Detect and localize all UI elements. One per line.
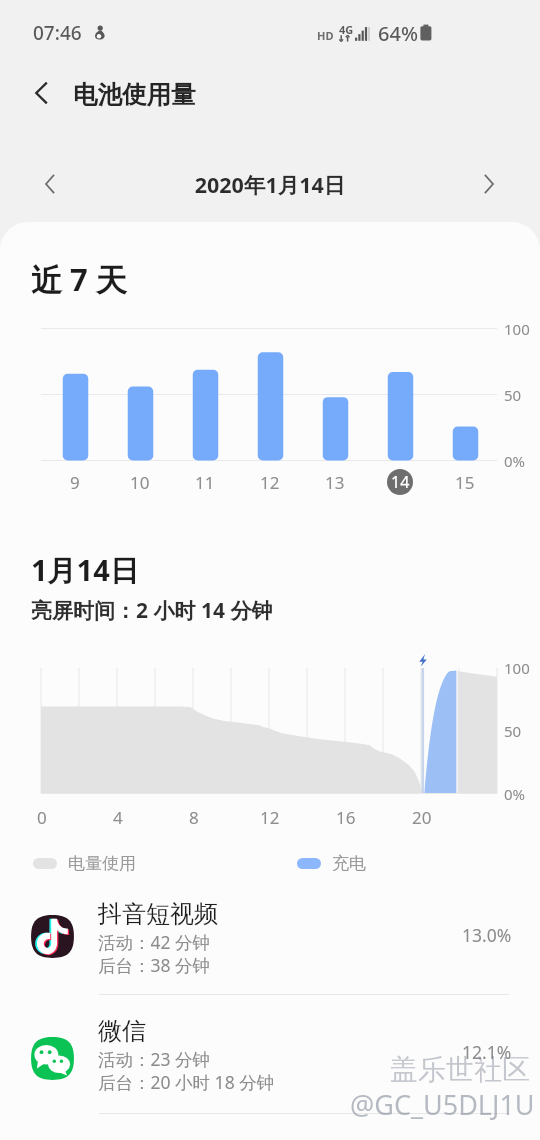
staticText: 4 <box>113 806 123 829</box>
staticText: HD <box>317 28 334 43</box>
staticText: 抖音短视频 <box>98 899 218 929</box>
staticText: 亮屏时间：2 小时 14 分钟 <box>31 596 273 625</box>
button[interactable]: Previous day <box>27 160 75 208</box>
staticText: 64% <box>378 20 418 47</box>
staticText: 4G <box>339 22 354 37</box>
button[interactable]: 抖音短视频 <box>0 897 540 994</box>
button[interactable]: Next day <box>464 160 512 208</box>
staticText: 12.1% <box>462 1040 512 1064</box>
button[interactable]: 11 <box>185 469 225 495</box>
button[interactable]: 10 <box>120 469 160 495</box>
button[interactable]: 14 <box>387 469 413 495</box>
staticText: @GC_U5DLJ1U <box>350 1086 535 1123</box>
button[interactable]: 13 <box>315 469 355 495</box>
staticText: 近 7 天 <box>31 258 127 300</box>
button[interactable]: 9 <box>55 469 95 495</box>
staticText: 13.0% <box>462 923 512 947</box>
staticText: 电池使用量 <box>73 79 196 110</box>
staticText: 后台：20 小时 18 分钟 <box>98 1070 275 1094</box>
staticText: 2020年1月14日 <box>0 170 540 199</box>
staticText: 12 <box>260 806 280 829</box>
staticText: 50 <box>504 385 522 405</box>
staticText: 0% <box>504 451 526 471</box>
staticText: 电量使用 <box>68 853 136 874</box>
staticText: 12 <box>260 471 280 494</box>
staticText: 15 <box>455 471 475 494</box>
staticText: 100 <box>504 658 530 678</box>
staticText: 11 <box>195 471 215 494</box>
staticText: 16 <box>336 806 356 829</box>
staticText: 13 <box>325 471 345 494</box>
staticText: 盖乐世社区 <box>390 1052 530 1087</box>
staticText: 0 <box>37 806 47 829</box>
staticText: 9 <box>70 471 80 494</box>
staticText: 20 <box>412 806 432 829</box>
staticText: 14 <box>391 471 410 493</box>
staticText: 8 <box>189 806 199 829</box>
staticText: 0% <box>504 784 526 804</box>
button[interactable]: 15 <box>445 469 485 495</box>
button[interactable]: Back <box>17 69 65 117</box>
staticText: 活动：42 分钟 <box>98 930 211 954</box>
staticText: 07:46 <box>33 20 82 46</box>
staticText: 1月14日 <box>31 550 139 590</box>
staticText: 微信 <box>98 1016 146 1046</box>
button[interactable]: 12 <box>250 469 290 495</box>
staticText: 100 <box>504 319 530 339</box>
staticText: 10 <box>130 471 150 494</box>
staticText: 后台：38 分钟 <box>98 953 211 977</box>
staticText: 充电 <box>332 853 366 874</box>
staticText: 活动：23 分钟 <box>98 1047 211 1071</box>
button[interactable]: 微信 <box>0 1014 540 1111</box>
staticText: 50 <box>504 721 522 741</box>
